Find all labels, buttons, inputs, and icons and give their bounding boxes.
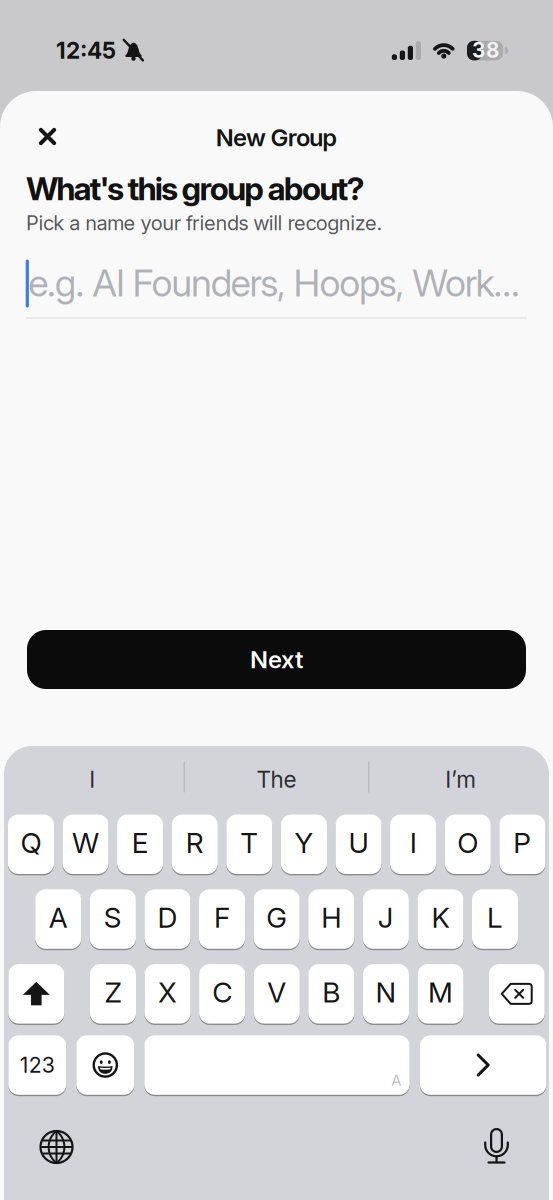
button[interactable]: W <box>62 814 109 874</box>
button[interactable]: Z <box>90 964 136 1024</box>
button[interactable]: V <box>254 964 300 1024</box>
staticText: 123 <box>20 1052 55 1078</box>
staticText: N <box>375 975 396 1009</box>
staticText: O <box>457 826 478 860</box>
button[interactable]: M <box>417 964 464 1024</box>
button[interactable]: N <box>363 964 409 1024</box>
button[interactable]: T <box>226 814 272 874</box>
button[interactable]: Numbers <box>8 1035 66 1095</box>
button[interactable]: Q <box>8 814 54 874</box>
button[interactable]: U <box>335 814 382 874</box>
staticText: M <box>428 975 453 1009</box>
staticText: S <box>104 901 122 934</box>
button[interactable]: Return <box>420 1035 546 1095</box>
button[interactable]: B <box>308 964 354 1024</box>
staticText: H <box>321 901 341 934</box>
button[interactable]: C <box>199 964 245 1024</box>
button[interactable]: L <box>472 889 518 949</box>
button[interactable]: I’m <box>376 752 546 806</box>
button[interactable]: Y <box>281 814 327 874</box>
button[interactable]: A <box>35 889 81 949</box>
staticText: A <box>391 1071 401 1089</box>
button[interactable]: K <box>417 889 463 949</box>
button[interactable]: S <box>90 889 136 949</box>
button[interactable]: Space <box>144 1035 410 1095</box>
staticText: 12:45 <box>56 37 116 64</box>
staticText: New Group <box>216 123 337 152</box>
button[interactable]: H <box>308 889 354 949</box>
staticText: C <box>212 975 232 1009</box>
staticText: K <box>431 901 449 934</box>
staticText: 38 <box>472 38 499 63</box>
staticText: G <box>266 901 287 934</box>
staticText: V <box>267 975 286 1009</box>
button[interactable]: Shift <box>8 964 64 1024</box>
staticText: What's this group about? <box>26 169 365 208</box>
staticText: Q <box>20 826 41 860</box>
staticText: B <box>322 975 340 1009</box>
button[interactable]: E <box>117 814 163 874</box>
staticText: P <box>513 826 531 860</box>
staticText: W <box>72 826 99 860</box>
button[interactable]: X <box>144 964 191 1024</box>
staticText: I <box>89 766 95 793</box>
button[interactable]: Close <box>36 125 59 148</box>
staticText: L <box>487 901 503 934</box>
staticText: Y <box>294 826 313 860</box>
staticText: X <box>158 975 177 1009</box>
staticText: The <box>256 766 296 793</box>
staticText: E <box>132 826 149 860</box>
staticText: I <box>410 826 417 860</box>
staticText: D <box>157 901 177 934</box>
staticText: Z <box>104 975 121 1009</box>
staticText: F <box>214 901 230 934</box>
button[interactable]: R <box>172 814 218 874</box>
button[interactable]: D <box>144 889 190 949</box>
button[interactable]: Delete <box>489 964 545 1024</box>
staticText: e.g. AI Founders, Hoops, Work… <box>28 260 519 306</box>
staticText: J <box>378 901 394 934</box>
button[interactable]: I <box>7 752 177 806</box>
button[interactable]: The <box>191 752 361 806</box>
staticText: I’m <box>445 766 476 793</box>
button[interactable]: Next <box>27 630 526 689</box>
button[interactable]: F <box>199 889 245 949</box>
button[interactable]: Dictate <box>466 1116 526 1176</box>
button[interactable]: J <box>363 889 409 949</box>
staticText: Next <box>250 645 303 674</box>
staticText: Pick a name your friends will recognize. <box>26 211 383 235</box>
button[interactable]: Emoji <box>76 1035 134 1095</box>
button[interactable]: P <box>499 814 545 874</box>
staticText: R <box>186 826 204 860</box>
button[interactable]: Next keyboard <box>26 1117 86 1177</box>
button[interactable]: G <box>254 889 300 949</box>
button[interactable]: I <box>390 814 436 874</box>
button[interactable]: Group name <box>0 252 553 318</box>
staticText: A <box>49 901 68 934</box>
button[interactable]: O <box>445 814 491 874</box>
staticText: U <box>349 826 369 860</box>
staticText: T <box>240 826 258 860</box>
